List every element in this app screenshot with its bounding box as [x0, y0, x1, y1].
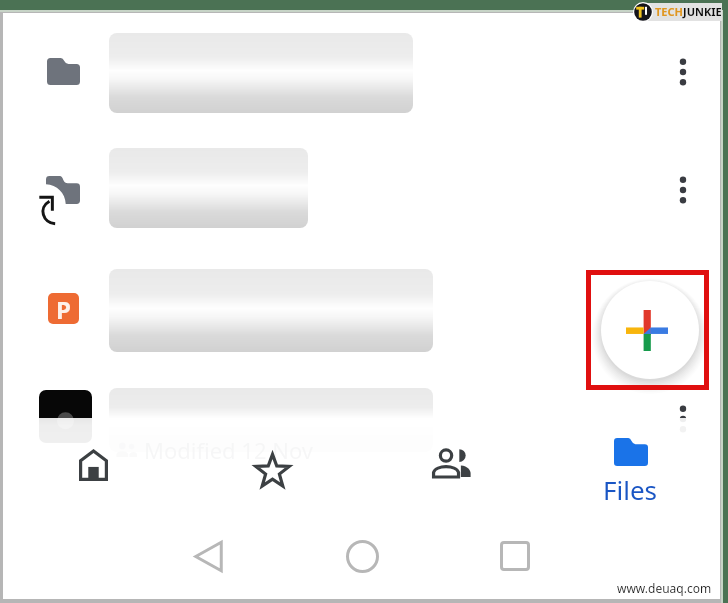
- button[interactable]: More options: [670, 401, 696, 437]
- button[interactable]: [109, 269, 433, 352]
- staticText: Modified 12 Nov: [144, 435, 314, 465]
- staticText: www.deuaq.com: [617, 580, 712, 596]
- button[interactable]: Back: [186, 534, 230, 578]
- button[interactable]: [109, 33, 413, 113]
- staticText: TECH: [655, 4, 683, 19]
- button[interactable]: Create new: [601, 281, 699, 379]
- button[interactable]: [109, 388, 433, 452]
- staticText: P: [56, 293, 71, 324]
- button[interactable]: More options: [670, 172, 696, 208]
- button[interactable]: Files: [541, 418, 720, 510]
- button[interactable]: Home: [340, 534, 384, 578]
- button[interactable]: Home: [3, 418, 183, 510]
- button[interactable]: Starred: [183, 418, 362, 510]
- button[interactable]: [109, 148, 308, 228]
- button[interactable]: Recent apps: [493, 534, 537, 578]
- staticText: Files: [603, 472, 658, 507]
- staticText: My holiday.jpg: [141, 409, 298, 440]
- staticText: JUNKIE: [683, 4, 722, 19]
- button[interactable]: More options: [670, 54, 696, 90]
- button[interactable]: Shared: [362, 418, 541, 510]
